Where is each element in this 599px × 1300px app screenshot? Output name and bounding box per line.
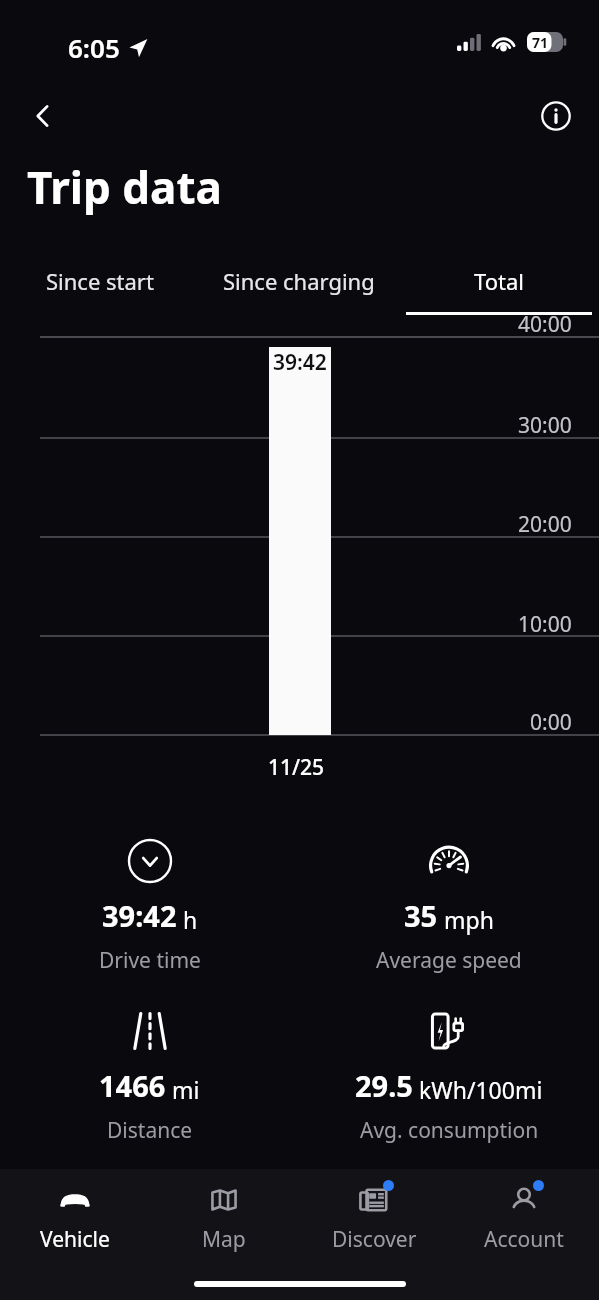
button[interactable]: 39:42 — [0, 838, 299, 975]
staticText: mi — [172, 1074, 200, 1105]
staticText: Discover — [332, 1225, 417, 1254]
staticText: 29.5 — [355, 1066, 413, 1105]
staticText: Trip data — [27, 157, 222, 217]
button[interactable]: 29.5 — [299, 1008, 599, 1145]
staticText: Since start — [46, 266, 154, 296]
staticText: h — [183, 904, 198, 935]
staticText: 1466 — [99, 1066, 166, 1105]
staticText: 39:42 — [273, 348, 327, 377]
button[interactable]: Account — [449, 1169, 599, 1261]
staticText: 35 — [404, 896, 438, 935]
staticText: 20:00 — [518, 510, 572, 539]
button[interactable]: Total — [399, 255, 599, 315]
button[interactable]: Map — [149, 1169, 299, 1261]
staticText: 11/25 — [268, 753, 325, 782]
staticText: Avg. consumption — [360, 1116, 539, 1145]
button[interactable]: Back — [20, 93, 66, 139]
staticText: 71 — [532, 33, 549, 52]
staticText: mph — [444, 904, 494, 935]
staticText: 10:00 — [518, 610, 572, 639]
staticText: kWh/100mi — [419, 1074, 543, 1105]
staticText: 30:00 — [518, 411, 572, 440]
button[interactable]: Since start — [0, 255, 199, 315]
staticText: Average speed — [376, 946, 522, 975]
button[interactable]: 35 — [299, 838, 599, 975]
button[interactable]: Since charging — [199, 255, 399, 315]
button[interactable]: Information — [533, 93, 579, 139]
button[interactable]: Discover — [299, 1169, 449, 1261]
staticText: Drive time — [99, 946, 201, 975]
staticText: 6:05 — [68, 30, 120, 65]
button[interactable]: Vehicle — [0, 1169, 149, 1261]
staticText: 39:42 — [102, 896, 177, 935]
staticText: 0:00 — [530, 708, 572, 737]
staticText: Map — [202, 1225, 246, 1254]
staticText: Vehicle — [40, 1225, 110, 1254]
staticText: 40:00 — [518, 310, 572, 339]
button[interactable]: 1466 — [0, 1008, 299, 1145]
staticText: Total — [474, 266, 524, 296]
staticText: Account — [484, 1225, 564, 1254]
staticText: Since charging — [223, 266, 375, 296]
staticText: Distance — [107, 1116, 193, 1145]
